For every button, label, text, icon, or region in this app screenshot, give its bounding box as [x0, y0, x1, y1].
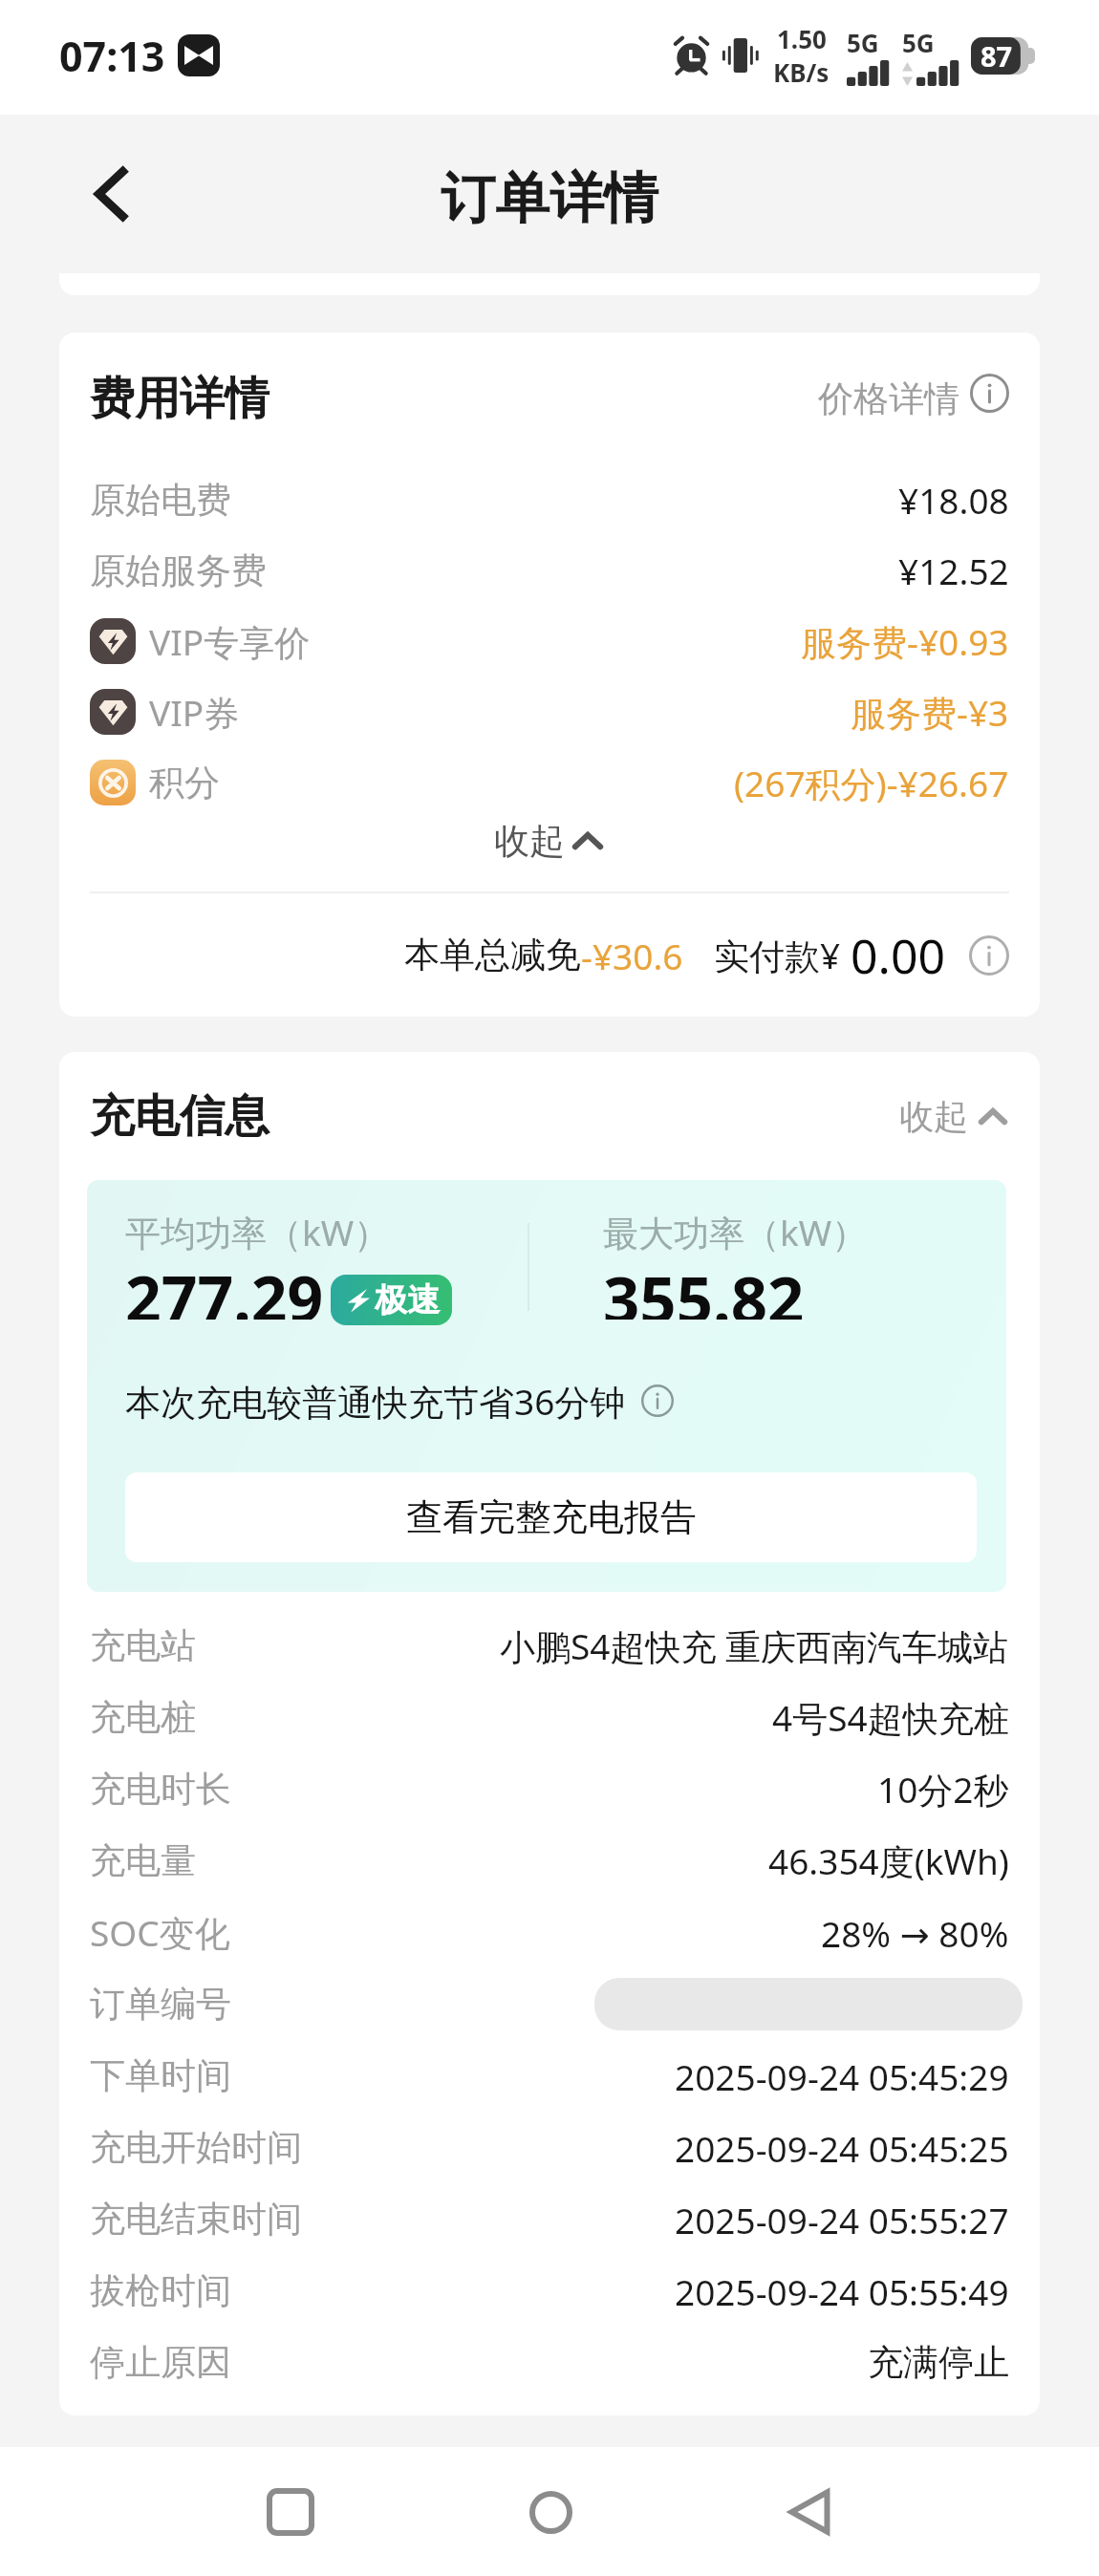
staticText: 极速 — [375, 1279, 440, 1320]
staticText: 平均功率（kW） — [125, 1208, 390, 1256]
button[interactable]: Back — [752, 2455, 867, 2569]
staticText: 订单编号 — [90, 1982, 231, 2027]
staticText: 服务费-¥0.93 — [801, 617, 1009, 666]
staticText: KB/s — [773, 55, 830, 89]
staticText: 价格详情 — [818, 376, 959, 421]
staticText: VIP专享价 — [149, 617, 311, 666]
staticText: 查看完整充电报告 — [406, 1494, 697, 1540]
staticText: 充电开始时间 — [90, 2125, 302, 2170]
staticText: 停止原因 — [90, 2340, 231, 2385]
staticText: 实付款¥ — [714, 931, 841, 979]
staticText: 87 — [980, 37, 1013, 75]
staticText: 2025-09-24 05:45:25 — [675, 2124, 1009, 2172]
staticText: (267积分)-¥26.67 — [734, 759, 1009, 807]
staticText: 2025-09-24 05:55:27 — [675, 2196, 1009, 2243]
staticText: ¥18.08 — [898, 476, 1009, 524]
staticText: 服务费-¥3 — [851, 688, 1009, 737]
staticText: 2025-09-24 05:55:49 — [675, 2267, 1009, 2315]
staticText: 10分2秒 — [877, 1765, 1009, 1814]
button[interactable]: 收起 — [899, 1095, 1009, 1138]
staticText: VIP券 — [149, 688, 240, 737]
staticText: 5G — [847, 26, 879, 59]
staticText: 277.29 — [125, 1255, 324, 1320]
staticText: 5G — [902, 26, 935, 59]
staticText: 积分 — [149, 761, 220, 805]
staticText: 0.00 — [851, 923, 946, 988]
staticText: 充满停止 — [868, 2340, 1009, 2385]
button[interactable]: Home — [493, 2455, 608, 2569]
staticText: 本次充电较普通快充节省36分钟 — [125, 1377, 626, 1426]
staticText: 下单时间 — [90, 2053, 231, 2098]
staticText: 小鹏S4超快充 重庆西南汽车城站 — [500, 1621, 1009, 1670]
button[interactable]: Recent apps — [233, 2455, 348, 2569]
staticText: 本单总减免 — [404, 933, 581, 977]
button[interactable]: Back — [63, 146, 159, 242]
staticText: 1.50 — [777, 22, 827, 55]
staticText: 原始服务费 — [90, 548, 267, 593]
button[interactable]: 价格详情 — [818, 376, 1009, 421]
button[interactable]: 查看完整充电报告 — [125, 1472, 977, 1562]
button[interactable]: Time saved info — [641, 1385, 674, 1417]
staticText: 最大功率（kW） — [603, 1208, 868, 1256]
staticText: 充电量 — [90, 1838, 196, 1883]
staticText: 原始电费 — [90, 478, 231, 523]
button[interactable]: 收起 — [90, 818, 1009, 864]
staticText: 充电结束时间 — [90, 2197, 302, 2242]
staticText: ¥12.52 — [898, 547, 1009, 594]
staticText: 收起 — [899, 1095, 968, 1138]
staticText: 4号S4超快充桩 — [772, 1693, 1009, 1742]
staticText: 46.354度(kWh) — [768, 1836, 1009, 1885]
staticText: 07:13 — [59, 28, 165, 84]
staticText: 拔枪时间 — [90, 2268, 231, 2313]
button[interactable]: Payment info — [969, 935, 1009, 976]
staticText: 355.82 — [603, 1255, 805, 1320]
staticText: 订单详情 — [441, 164, 658, 233]
staticText: 充电站 — [90, 1623, 196, 1668]
staticText: SOC变化 — [90, 1908, 230, 1957]
staticText: -¥30.6 — [581, 932, 683, 979]
staticText: 2025-09-24 05:45:29 — [675, 2052, 1009, 2100]
staticText: 费用详情 — [90, 371, 269, 427]
staticText: 收起 — [494, 819, 565, 864]
staticText: 充电信息 — [90, 1088, 269, 1145]
staticText: 28% → 80% — [821, 1909, 1009, 1957]
staticText: 充电时长 — [90, 1767, 231, 1812]
staticText: 充电桩 — [90, 1695, 196, 1740]
